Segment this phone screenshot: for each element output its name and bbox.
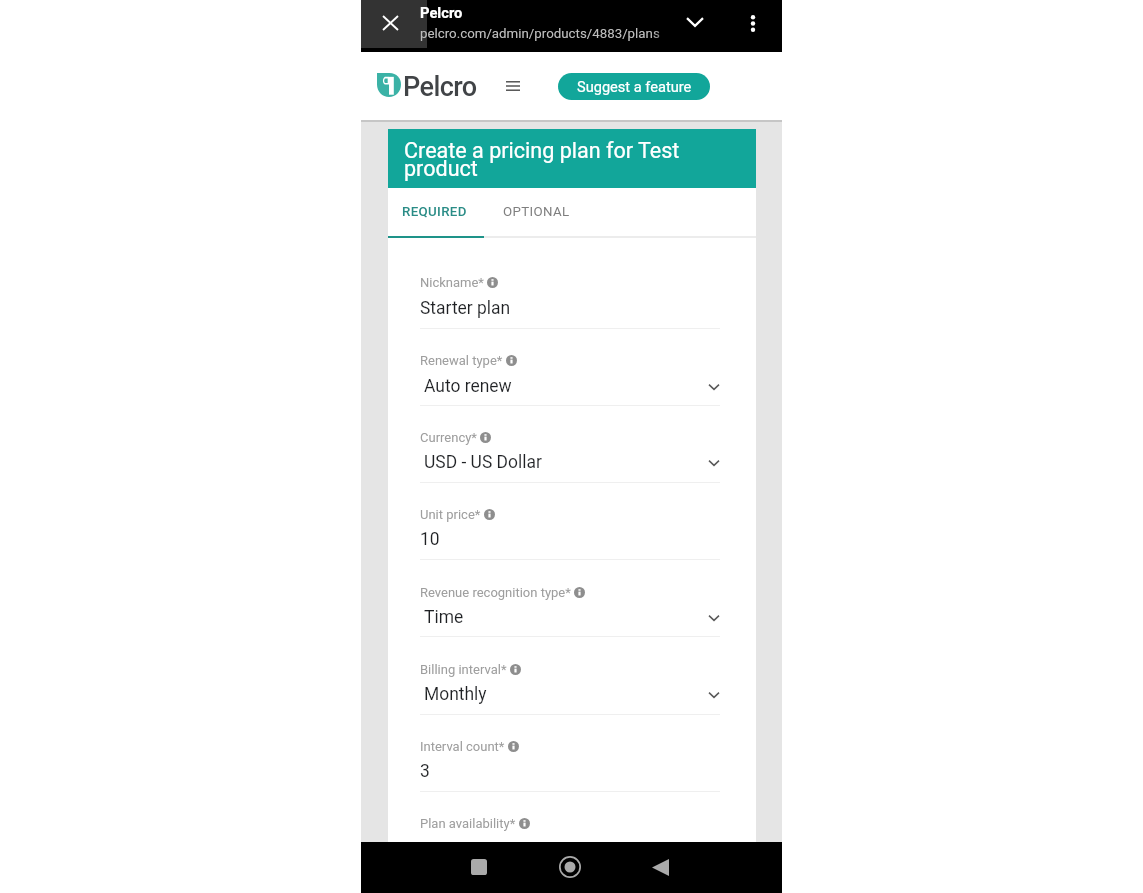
button[interactable] bbox=[420, 426, 720, 482]
staticText: Renewal type* bbox=[420, 353, 503, 368]
staticText: Unit price* bbox=[420, 507, 481, 522]
button[interactable]: Expand tab bbox=[671, 0, 719, 46]
staticText: Starter plan bbox=[420, 298, 511, 318]
button[interactable]: Menu bbox=[496, 69, 530, 103]
button[interactable]: OPTIONAL bbox=[486, 187, 586, 236]
button[interactable]: Close bbox=[361, 0, 427, 48]
button[interactable] bbox=[420, 349, 720, 406]
staticText: Create a pricing plan for Test product bbox=[404, 138, 696, 181]
staticText: 3 bbox=[420, 761, 430, 781]
staticText: Billing interval* bbox=[420, 662, 507, 677]
staticText: Pelcro bbox=[403, 71, 477, 103]
button[interactable]: Home bbox=[546, 843, 594, 891]
button[interactable]: Back bbox=[636, 843, 684, 891]
button[interactable]: Suggest a feature bbox=[558, 73, 710, 100]
button[interactable]: REQUIRED bbox=[388, 187, 481, 236]
staticText: 10 bbox=[420, 529, 440, 549]
staticText: Plan availability* bbox=[420, 816, 516, 831]
staticText: Nickname* bbox=[420, 275, 484, 290]
button[interactable]: More options bbox=[731, 0, 775, 46]
staticText: Interval count* bbox=[420, 739, 505, 754]
staticText: Suggest a feature bbox=[577, 78, 692, 95]
staticText: pelcro.com/admin/products/4883/plans bbox=[420, 26, 660, 42]
staticText: USD - US Dollar bbox=[424, 452, 542, 472]
staticText: Time bbox=[424, 607, 464, 627]
button[interactable]: Pelcro home bbox=[377, 66, 478, 104]
button[interactable] bbox=[420, 581, 720, 638]
staticText: OPTIONAL bbox=[503, 204, 570, 220]
staticText: Currency* bbox=[420, 430, 477, 445]
button[interactable] bbox=[420, 503, 720, 560]
staticText: Auto renew bbox=[424, 376, 512, 396]
button[interactable] bbox=[420, 658, 720, 715]
button[interactable] bbox=[420, 735, 720, 791]
staticText: REQUIRED bbox=[402, 204, 467, 220]
staticText: Monthly bbox=[424, 684, 487, 704]
button[interactable] bbox=[420, 271, 720, 330]
button[interactable]: Recent apps bbox=[455, 843, 503, 891]
staticText: Pelcro bbox=[420, 4, 463, 21]
staticText: Revenue recognition type* bbox=[420, 585, 571, 600]
